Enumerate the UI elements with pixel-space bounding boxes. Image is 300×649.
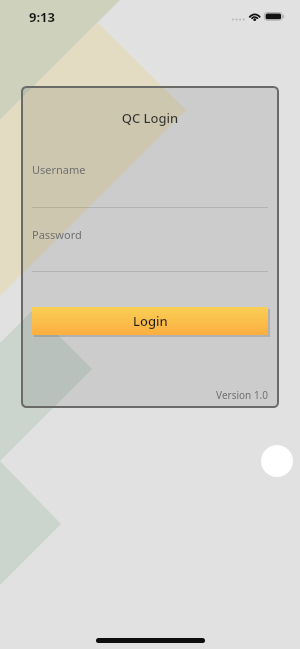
staticText: Password — [32, 227, 82, 242]
staticText: 9:13 — [29, 8, 55, 26]
staticText: Version 1.0 — [32, 388, 268, 402]
button[interactable]: Login — [32, 307, 268, 335]
button[interactable]: Help — [261, 445, 293, 477]
staticText: Username — [32, 162, 86, 177]
staticText: Login — [133, 312, 168, 330]
staticText: QC Login — [21, 109, 279, 127]
